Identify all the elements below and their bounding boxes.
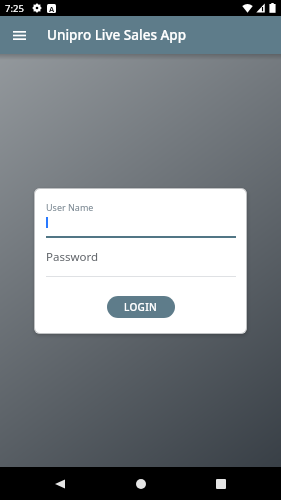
button[interactable]: Home xyxy=(121,467,161,500)
button[interactable]: Open navigation menu xyxy=(0,16,38,54)
button[interactable]: Back xyxy=(40,467,80,500)
staticText: A xyxy=(49,4,55,13)
button[interactable]: LOGIN xyxy=(107,296,175,318)
staticText: User Name xyxy=(46,201,94,213)
staticText: 7:25 xyxy=(5,2,24,15)
staticText: LOGIN xyxy=(124,300,158,314)
staticText: Password xyxy=(46,249,99,265)
staticText: Unipro Live Sales App xyxy=(47,26,187,44)
button[interactable]: Recent apps xyxy=(201,467,241,500)
